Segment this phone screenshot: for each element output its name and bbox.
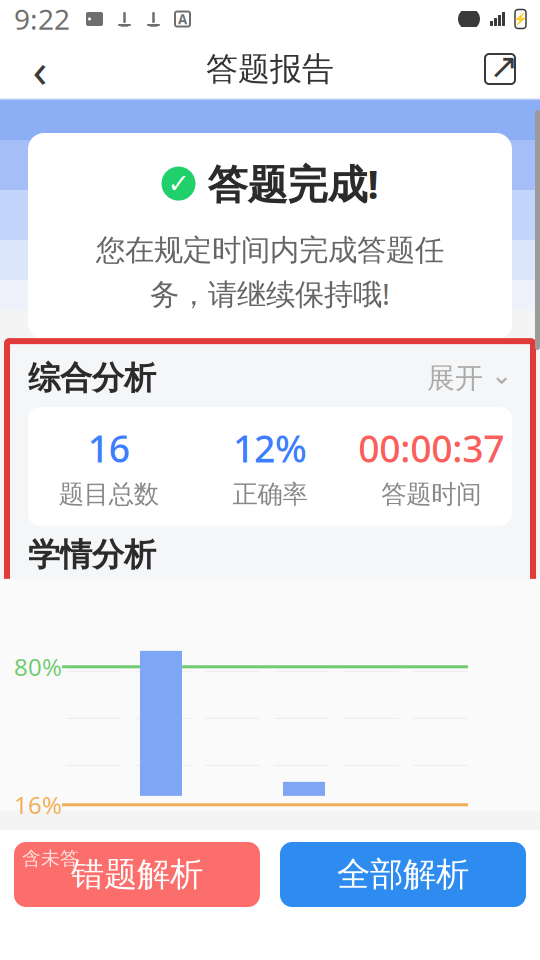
staticText: A [178,10,187,28]
staticText: ‹ [32,37,47,101]
button[interactable]: Share [472,41,528,97]
staticText: 答题时间 [381,479,481,510]
staticText: ⚡ [513,12,528,26]
staticText: 9:22 [14,0,70,38]
staticText: ↗ [489,46,518,86]
staticText: 全部解析 [337,854,469,895]
button[interactable]: 全部解析 [280,842,526,907]
staticText: ⌄ [483,361,512,389]
staticText: ✓ [167,168,189,199]
staticText: 学情分析 [28,535,156,574]
staticText: 80% [14,651,62,683]
button[interactable]: 综合分析 [7,349,533,407]
staticText: 展开 [427,361,483,395]
staticText: 您在规定时间内完成答题任 [96,232,444,268]
staticText: 12% [233,423,307,473]
staticText: 含未答 [22,847,79,870]
staticText: 综合分析 [28,358,156,398]
button[interactable]: 错题解析 [14,842,260,907]
staticText: 00:00:37 [358,423,504,473]
staticText: 16 [88,423,130,473]
staticText: 错题解析 [71,854,203,895]
button[interactable]: Back [12,41,68,97]
staticText: 16% [14,789,62,821]
staticText: 答题报告 [206,49,334,89]
staticText: 正确率 [232,479,307,510]
staticText: 题目总数 [59,479,159,510]
staticText: 答题完成! [207,157,378,210]
staticText: 务，请继续保持哦! [150,274,390,313]
